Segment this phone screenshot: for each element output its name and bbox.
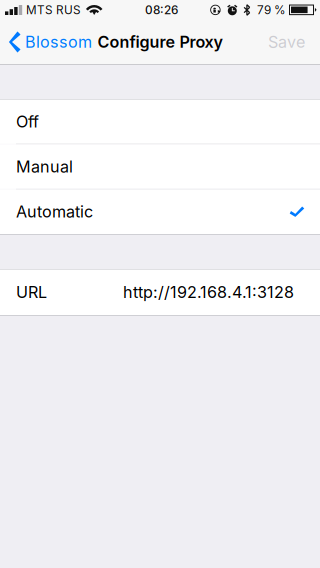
staticText: 08:26 [145, 3, 178, 17]
staticText: Manual [16, 157, 73, 176]
staticText: MTS RUS [26, 3, 81, 17]
button[interactable]: Save [256, 20, 320, 64]
button[interactable]: URL [0, 269, 320, 315]
staticText: Off [16, 112, 39, 131]
button[interactable]: Automatic [0, 189, 320, 234]
staticText: Save [268, 32, 305, 52]
staticText: Automatic [16, 202, 93, 221]
staticText: Configure Proxy [97, 32, 222, 52]
button[interactable]: Off [0, 99, 320, 144]
staticText: Blossom [25, 32, 92, 52]
button[interactable]: Blossom [0, 20, 98, 64]
staticText: 79 % [257, 3, 286, 17]
button[interactable]: Manual [0, 144, 320, 189]
staticText: http://192.168.4.1:3128 [123, 282, 294, 302]
staticText: URL [16, 282, 47, 302]
